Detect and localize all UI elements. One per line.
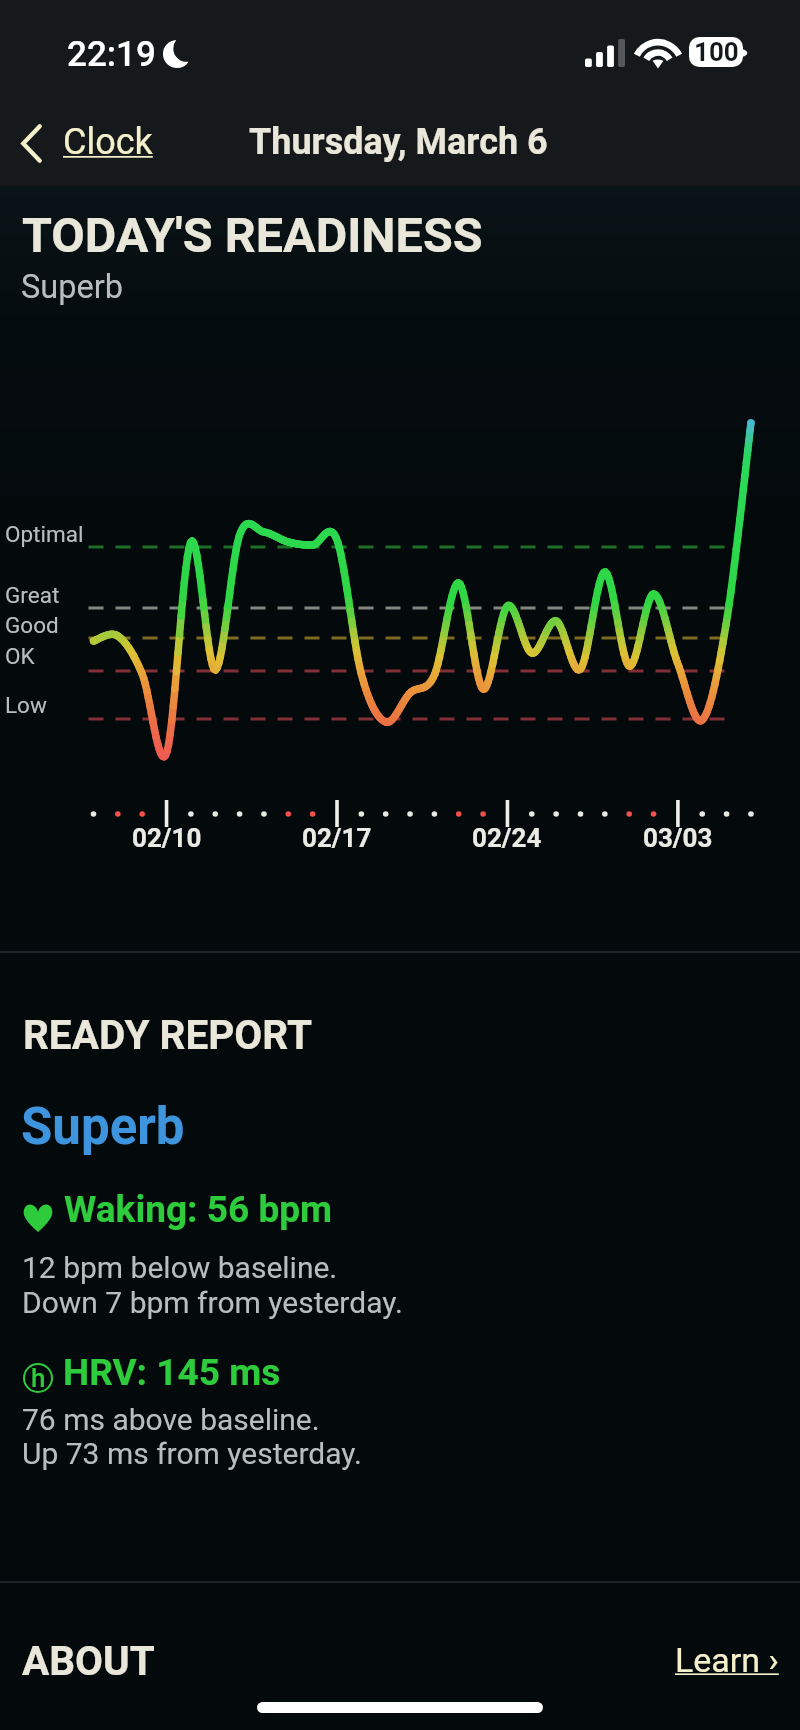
staticText: Down 7 bpm from yesterday. [22, 1285, 403, 1320]
button[interactable]: Learn › [663, 1632, 788, 1688]
staticText: 02/24 [472, 823, 542, 853]
staticText: Superb [21, 1097, 185, 1157]
staticText: 03/03 [643, 823, 713, 853]
staticText: 100 [694, 37, 739, 66]
staticText: Low [5, 692, 47, 718]
staticText: Thursday, March 6 [249, 121, 548, 163]
staticText: h [31, 1363, 46, 1391]
button[interactable]: Clock [8, 108, 166, 170]
staticText: Clock [63, 121, 153, 163]
staticText: 12 bpm below baseline. [22, 1250, 338, 1285]
staticText: ABOUT [22, 1637, 155, 1684]
staticText: Up 73 ms from yesterday. [22, 1436, 362, 1471]
staticText: Optimal [5, 521, 84, 547]
staticText: Great [5, 582, 60, 608]
staticText: Good [5, 612, 59, 638]
staticText: 22:19 [67, 34, 156, 75]
staticText: Waking: 56 bpm [64, 1188, 333, 1231]
staticText: OK [5, 643, 35, 669]
staticText: Superb [21, 268, 123, 306]
staticText: READY REPORT [23, 1011, 313, 1058]
staticText: HRV: 145 ms [63, 1351, 281, 1394]
staticText: 76 ms above baseline. [22, 1402, 320, 1437]
staticText: 02/10 [132, 823, 202, 853]
staticText: Learn › [675, 1640, 779, 1680]
staticText: TODAY'S READINESS [22, 207, 483, 264]
staticText: 02/17 [302, 823, 372, 853]
